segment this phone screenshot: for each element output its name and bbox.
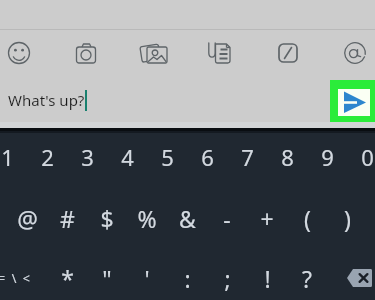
button[interactable]: 8 <box>267 137 307 177</box>
button[interactable]: Backspace <box>345 267 375 289</box>
staticText: : <box>184 263 191 294</box>
staticText: ) <box>344 203 351 234</box>
button[interactable]: ( <box>287 198 327 238</box>
button[interactable]: ) <box>327 198 367 238</box>
staticText: * <box>61 263 74 294</box>
button[interactable]: * <box>47 258 87 298</box>
button[interactable]: 2 <box>27 137 67 177</box>
button[interactable]: What's up? <box>0 80 320 128</box>
button[interactable]: # <box>47 198 87 238</box>
button[interactable]: 4 <box>107 137 147 177</box>
staticText: 8 <box>281 142 294 172</box>
staticText: 4 <box>121 142 134 172</box>
staticText: ? <box>302 263 312 294</box>
staticText: 9 <box>321 142 334 172</box>
staticText: What's up? <box>8 90 85 110</box>
button[interactable]: ' <box>127 258 167 298</box>
button[interactable]: $ <box>87 198 127 238</box>
button[interactable]: 3 <box>67 137 107 177</box>
staticText: & <box>179 203 196 234</box>
staticText: # <box>60 203 75 234</box>
button[interactable]: Sticker <box>268 33 308 73</box>
staticText: + <box>260 203 274 234</box>
button[interactable]: % <box>127 198 167 238</box>
button[interactable]: Mention <box>335 33 375 73</box>
staticText: 3 <box>81 142 94 172</box>
button[interactable]: " <box>87 258 127 298</box>
button[interactable]: 6 <box>187 137 227 177</box>
button[interactable]: Send <box>330 80 375 126</box>
button[interactable]: : <box>167 258 207 298</box>
staticText: 5 <box>161 142 174 172</box>
button[interactable]: Attach file <box>199 33 239 73</box>
button[interactable]: = \ < <box>0 258 34 298</box>
button[interactable]: + <box>247 198 287 238</box>
staticText: ' <box>144 263 150 294</box>
button[interactable]: Emoji <box>0 33 39 73</box>
button[interactable]: Camera <box>66 33 106 73</box>
button[interactable]: 5 <box>147 137 187 177</box>
button[interactable]: 7 <box>227 137 267 177</box>
button[interactable]: & <box>167 198 207 238</box>
button[interactable]: Gallery <box>133 33 173 73</box>
staticText: @ <box>17 203 38 234</box>
staticText: ; <box>224 263 231 294</box>
staticText: ! <box>264 263 271 294</box>
staticText: 0 <box>361 142 374 172</box>
staticText: 6 <box>201 142 214 172</box>
button[interactable]: 9 <box>307 137 347 177</box>
button[interactable]: @ <box>7 198 47 238</box>
staticText: " <box>102 263 112 294</box>
button[interactable]: ; <box>207 258 247 298</box>
button[interactable]: 0 <box>347 137 375 177</box>
staticText: 2 <box>41 142 54 172</box>
button[interactable]: ! <box>247 258 287 298</box>
staticText: $ <box>100 203 114 234</box>
staticText: ( <box>304 203 311 234</box>
button[interactable]: ? <box>287 258 327 298</box>
staticText: 1 <box>1 142 14 172</box>
staticText: 7 <box>241 142 254 172</box>
button[interactable]: - <box>207 198 247 238</box>
staticText: - <box>223 203 231 234</box>
button[interactable]: 1 <box>0 137 27 177</box>
staticText: = \ < <box>0 270 30 287</box>
staticText: % <box>137 203 157 234</box>
